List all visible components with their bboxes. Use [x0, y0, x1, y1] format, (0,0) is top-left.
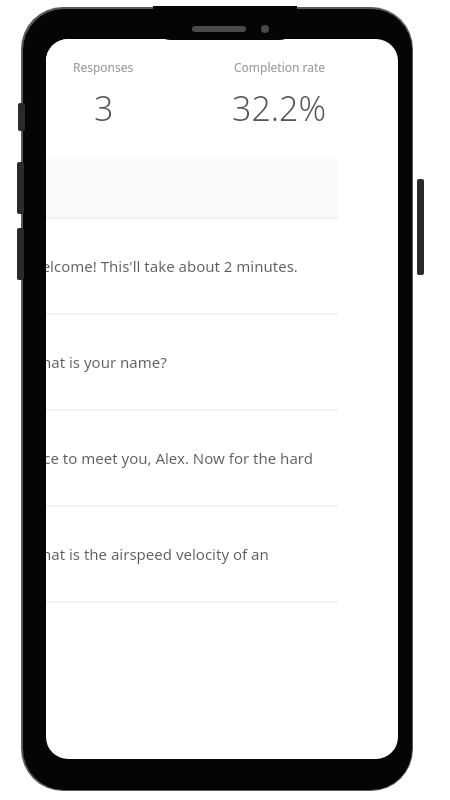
button[interactable]: What is the airspeed velocity of an unla…	[46, 507, 338, 601]
button[interactable]: Nice to meet you, Alex. Now for the hard…	[46, 411, 338, 505]
staticText: What is the airspeed velocity of an unla…	[46, 544, 318, 564]
button[interactable]: Completion rate	[221, 39, 338, 159]
staticText: Nice to meet you, Alex. Now for the hard…	[46, 448, 318, 468]
staticText: 32.2%	[232, 85, 327, 131]
button[interactable]: Welcome! This'll take about 2 minutes.	[46, 219, 338, 313]
button[interactable]: What is your name?	[46, 315, 338, 409]
staticText: Responses	[73, 59, 134, 75]
button[interactable]: Responses	[46, 39, 221, 159]
staticText: 3	[94, 85, 114, 131]
staticText: What is your name?	[46, 352, 167, 372]
staticText: Completion rate	[234, 59, 326, 75]
staticText: Welcome! This'll take about 2 minutes.	[46, 256, 298, 276]
